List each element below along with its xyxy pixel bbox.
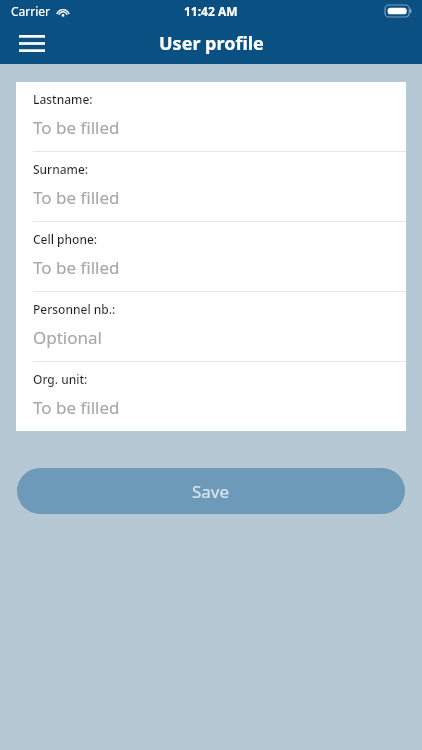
button[interactable]: Open navigation menu <box>8 22 56 64</box>
staticText: Surname: <box>33 161 89 177</box>
staticText: Save <box>192 480 230 503</box>
staticText: To be filled <box>33 396 120 419</box>
staticText: To be filled <box>33 186 120 209</box>
button[interactable]: Surname: <box>16 152 406 221</box>
button[interactable]: Save <box>17 468 405 514</box>
button[interactable]: Personnel nb.: <box>16 292 406 361</box>
staticText: Personnel nb.: <box>33 301 116 317</box>
staticText: Lastname: <box>33 91 93 107</box>
staticText: Cell phone: <box>33 231 98 247</box>
button[interactable]: Lastname: <box>16 82 406 151</box>
staticText: 11:42 AM <box>184 3 238 19</box>
staticText: Optional <box>33 326 102 349</box>
staticText: To be filled <box>33 116 120 139</box>
staticText: To be filled <box>33 256 120 279</box>
button[interactable]: Cell phone: <box>16 222 406 291</box>
button[interactable]: Org. unit: <box>16 362 406 431</box>
staticText: User profile <box>159 31 264 56</box>
staticText: Carrier <box>11 3 51 19</box>
staticText: Org. unit: <box>33 371 88 387</box>
